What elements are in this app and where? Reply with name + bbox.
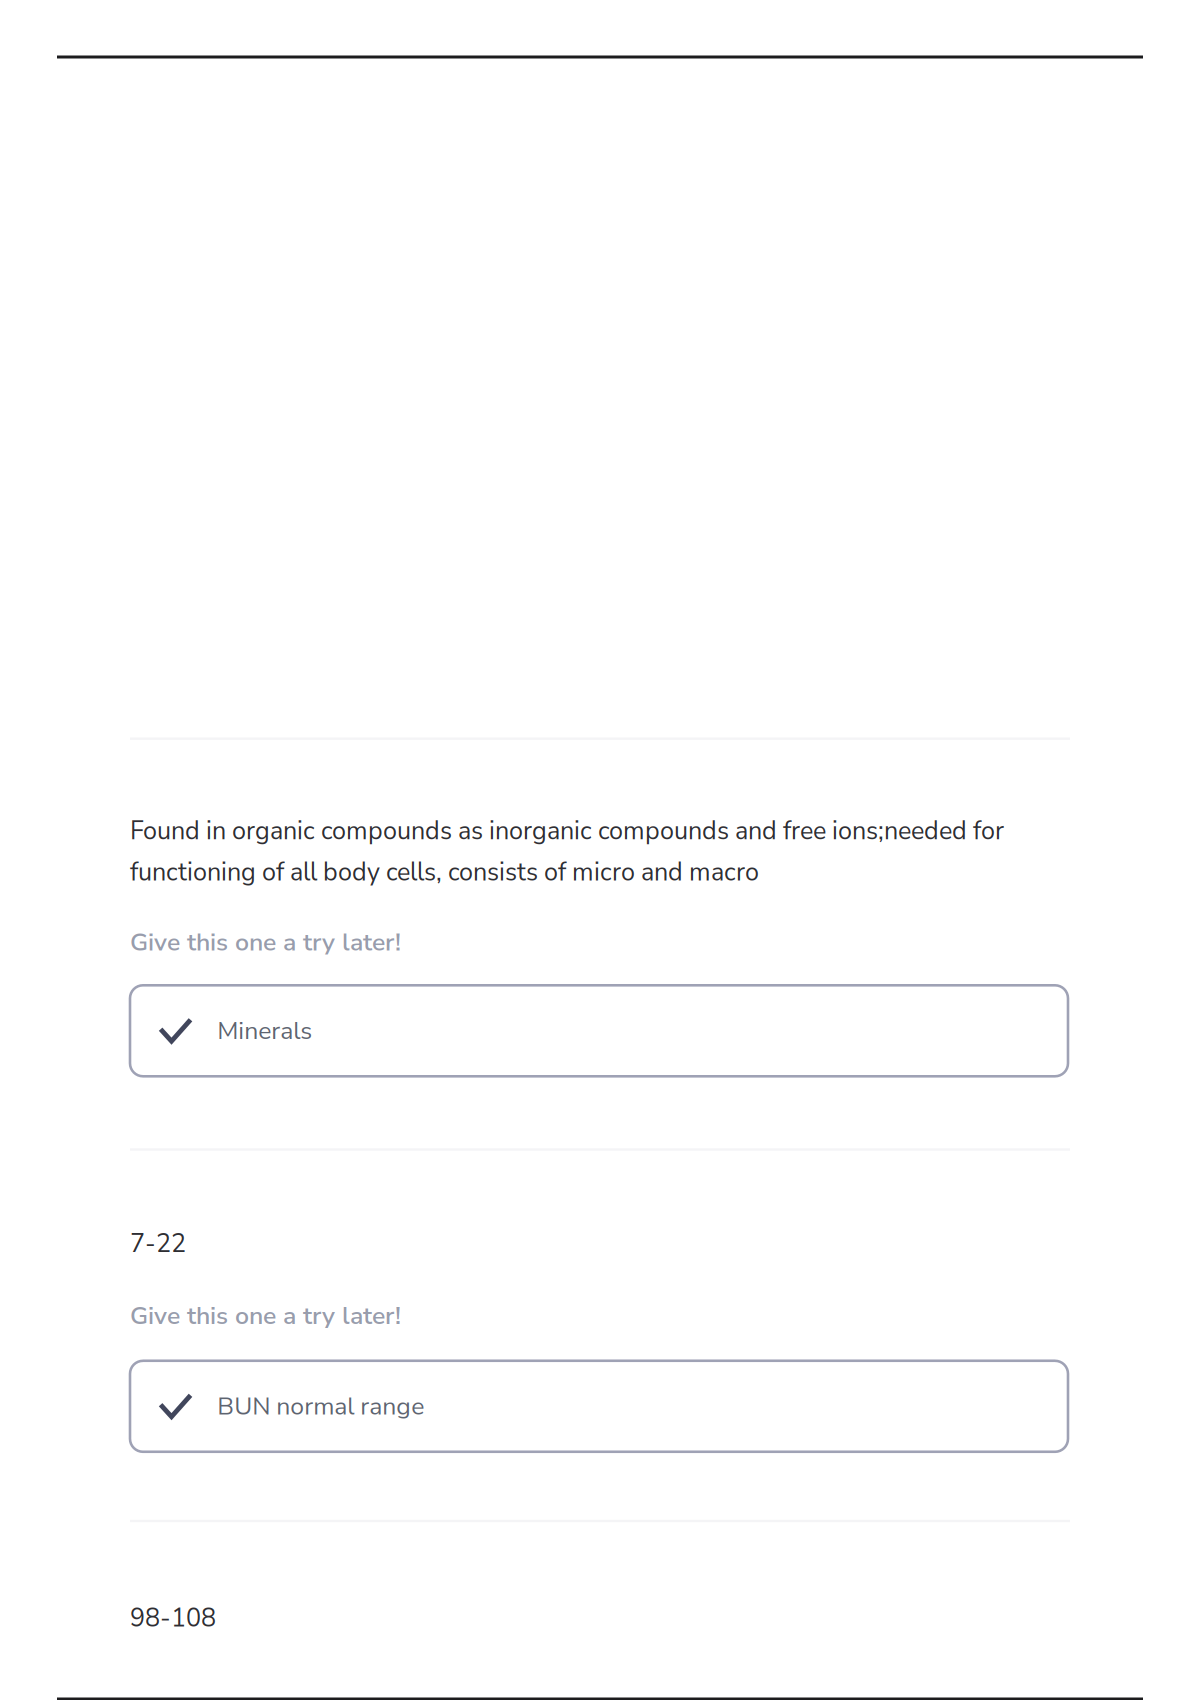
- staticText: 7-22: [130, 1227, 186, 1261]
- staticText: Found in organic compounds as inorganic …: [130, 814, 1004, 889]
- staticText: Give this one a try later!: [130, 1299, 401, 1333]
- staticText: Minerals: [217, 1014, 312, 1048]
- staticText: BUN normal range: [217, 1389, 424, 1423]
- button[interactable]: Minerals: [130, 985, 1068, 1076]
- button[interactable]: BUN normal range: [130, 1361, 1068, 1452]
- staticText: Give this one a try later!: [130, 925, 401, 959]
- staticText: 98-108: [130, 1601, 216, 1635]
